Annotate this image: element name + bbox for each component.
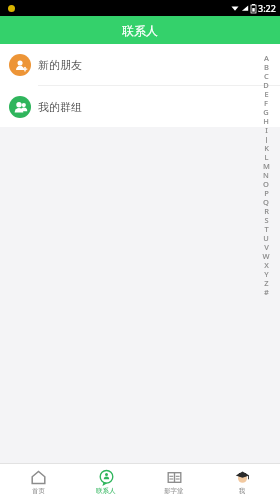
button[interactable]: O xyxy=(260,179,272,188)
staticText: J xyxy=(265,134,268,143)
button[interactable]: 联系人 xyxy=(76,464,136,500)
staticText: R xyxy=(264,206,269,215)
button[interactable]: X xyxy=(260,260,272,269)
button[interactable]: U xyxy=(260,233,272,242)
staticText: W xyxy=(262,251,270,260)
staticText: Y xyxy=(264,269,269,278)
button[interactable]: R xyxy=(260,206,272,215)
button[interactable]: I xyxy=(260,125,272,134)
staticText: G xyxy=(263,107,269,116)
button[interactable]: G xyxy=(260,107,272,116)
staticText: X xyxy=(264,260,269,269)
staticText: L xyxy=(264,152,269,161)
button[interactable]: N xyxy=(260,170,272,179)
staticText: Q xyxy=(263,197,269,206)
staticText: B xyxy=(264,62,269,71)
button[interactable]: Q xyxy=(260,197,272,206)
staticText: C xyxy=(264,71,269,80)
button[interactable]: 我 xyxy=(212,464,272,500)
staticText: Z xyxy=(264,278,269,287)
button[interactable]: 我的群组 xyxy=(0,86,280,127)
button[interactable]: # xyxy=(260,287,272,296)
button[interactable]: S xyxy=(260,215,272,224)
staticText: O xyxy=(263,179,269,188)
staticText: K xyxy=(264,143,269,152)
button[interactable]: C xyxy=(260,71,272,80)
staticText: P xyxy=(264,188,269,197)
staticText: 影字堂 xyxy=(164,487,184,495)
button[interactable]: V xyxy=(260,242,272,251)
staticText: 我的群组 xyxy=(38,100,82,114)
staticText: 3:22 xyxy=(258,2,276,14)
button[interactable]: 首页 xyxy=(8,464,68,500)
staticText: 联系人 xyxy=(122,23,158,38)
staticText: S xyxy=(264,215,269,224)
staticText: 我 xyxy=(239,487,246,495)
staticText: 新的朋友 xyxy=(38,58,82,72)
button[interactable]: M xyxy=(260,161,272,170)
staticText: M xyxy=(263,161,270,170)
staticText: 联系人 xyxy=(96,487,116,495)
button[interactable]: L xyxy=(260,152,272,161)
staticText: E xyxy=(264,89,269,98)
staticText: N xyxy=(263,170,269,179)
staticText: A xyxy=(264,53,269,62)
button[interactable]: W xyxy=(260,251,272,260)
staticText: D xyxy=(263,80,269,89)
button[interactable]: F xyxy=(260,98,272,107)
button[interactable]: T xyxy=(260,224,272,233)
button[interactable]: D xyxy=(260,80,272,89)
staticText: F xyxy=(264,98,268,107)
button[interactable]: B xyxy=(260,62,272,71)
staticText: I xyxy=(265,125,268,134)
staticText: 首页 xyxy=(32,487,45,495)
button[interactable]: Z xyxy=(260,278,272,287)
button[interactable]: A xyxy=(260,53,272,62)
staticText: H xyxy=(263,116,269,125)
button[interactable]: H xyxy=(260,116,272,125)
button[interactable]: 新的朋友 xyxy=(0,44,280,85)
button[interactable]: Y xyxy=(260,269,272,278)
button[interactable]: K xyxy=(260,143,272,152)
button[interactable]: 影字堂 xyxy=(144,464,204,500)
staticText: U xyxy=(263,233,269,242)
button[interactable]: J xyxy=(260,134,272,143)
staticText: # xyxy=(264,287,269,296)
button[interactable]: E xyxy=(260,89,272,98)
staticText: V xyxy=(264,242,269,251)
staticText: T xyxy=(264,224,269,233)
button[interactable]: P xyxy=(260,188,272,197)
